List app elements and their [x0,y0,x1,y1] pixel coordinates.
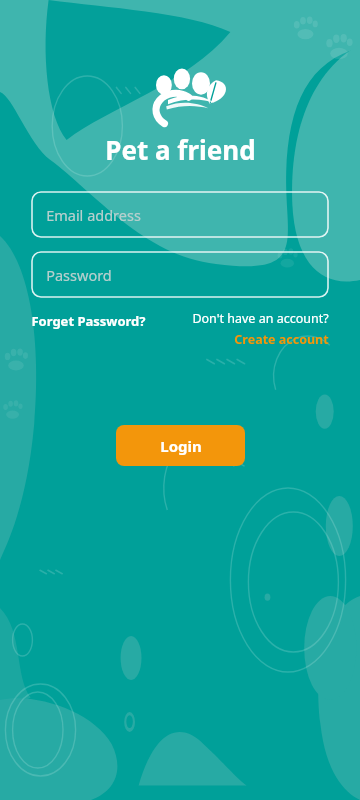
staticText: Pet a friend [105,132,256,167]
button[interactable]: Forget Password? [31,310,146,332]
button[interactable]: Login [116,425,245,466]
button[interactable]: Password [31,251,329,298]
staticText: Create account [234,331,329,348]
staticText: Don't have an account? [192,310,329,327]
button[interactable]: Create account [234,330,329,349]
staticText: Password [46,265,112,285]
staticText: Forget Password? [31,312,146,330]
staticText: Login [160,436,202,456]
staticText: Email address [46,205,141,225]
button[interactable]: Email address [31,191,329,238]
